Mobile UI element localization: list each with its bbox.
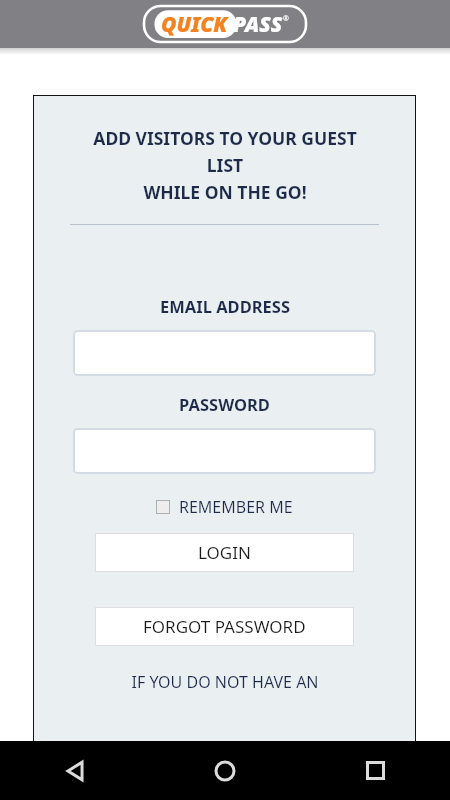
staticText: PASS <box>233 10 283 39</box>
staticText: IF YOU DO NOT HAVE AN <box>131 671 319 693</box>
staticText: LOGIN <box>198 541 251 564</box>
staticText: REMEMBER ME <box>179 496 293 518</box>
button[interactable]: Recent apps <box>300 741 450 800</box>
button[interactable]: LOGIN <box>95 533 354 572</box>
button[interactable]: Password <box>73 428 376 474</box>
staticText: ® <box>283 14 289 24</box>
staticText: EMAIL ADDRESS <box>160 295 290 317</box>
staticText: FORGOT PASSWORD <box>143 615 306 638</box>
button[interactable]: Home <box>150 741 300 800</box>
button[interactable]: Back <box>0 741 150 800</box>
button[interactable]: Email address <box>73 330 376 376</box>
button[interactable]: FORGOT PASSWORD <box>95 607 354 646</box>
staticText: ADD VISITORS TO YOUR GUEST LIST WHILE ON… <box>93 126 357 204</box>
button[interactable]: REMEMBER ME <box>148 492 301 522</box>
staticText: PASSWORD <box>179 393 270 415</box>
staticText: QUICK <box>161 10 228 39</box>
button[interactable]: QuickPass logo <box>142 4 308 44</box>
